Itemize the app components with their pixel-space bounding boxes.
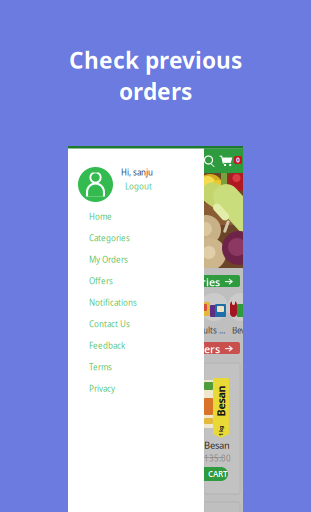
button[interactable]: My Orders	[89, 249, 204, 270]
staticText: Contact Us	[89, 319, 130, 329]
button[interactable]: Cart	[221, 156, 231, 166]
staticText: Terms	[89, 362, 112, 372]
button[interactable]: Todays Offers	[132, 342, 240, 354]
staticText: Offers	[89, 276, 113, 286]
staticText: Notifications	[89, 297, 137, 308]
staticText: Categories	[89, 233, 130, 243]
staticText: Bev	[232, 325, 245, 336]
button[interactable]: Shop by Categories	[132, 275, 240, 287]
staticText: Privacy	[89, 383, 115, 394]
button[interactable]: CART	[194, 467, 228, 481]
staticText: 135.00	[204, 453, 231, 464]
button[interactable]: Privacy	[89, 378, 204, 399]
staticText: Besan	[205, 394, 236, 408]
staticText: My Orders	[89, 254, 128, 265]
staticText: Feedback	[89, 340, 125, 351]
staticText: 0	[236, 156, 240, 164]
button[interactable]: Logout	[123, 180, 154, 193]
staticText: 1 kg	[216, 427, 226, 435]
staticText: Home	[89, 211, 112, 222]
staticText: Check previous	[69, 45, 242, 75]
button[interactable]: Terms	[89, 356, 204, 378]
button[interactable]: Contact Us	[89, 313, 204, 335]
button[interactable]: Notifications	[89, 292, 204, 313]
staticText: Besan	[204, 439, 230, 451]
staticText: Todays Offers	[149, 342, 220, 356]
staticText: Shop by Categories	[119, 275, 220, 289]
button[interactable]: Feedback	[89, 335, 204, 356]
staticText: CART	[208, 469, 228, 479]
button[interactable]: Categories	[89, 227, 204, 249]
button[interactable]: Offers	[89, 270, 204, 292]
staticText: Logout	[125, 181, 152, 192]
button[interactable]: Search	[205, 156, 215, 167]
button[interactable]: Cart item count	[234, 156, 242, 164]
staticText: ults …	[203, 325, 225, 336]
staticText: Hi, sanju	[121, 167, 153, 178]
staticText: orders	[119, 76, 192, 106]
button[interactable]: Home	[89, 206, 204, 227]
